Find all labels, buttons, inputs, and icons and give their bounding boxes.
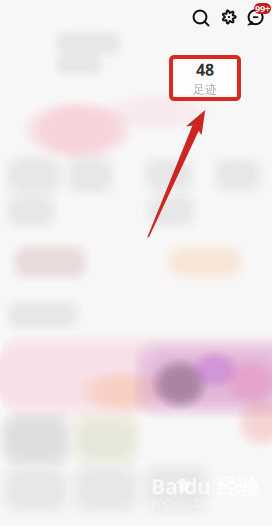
staticText: 48	[196, 59, 214, 80]
staticText: 99+	[255, 2, 270, 15]
button[interactable]: Creator centre	[214, 0, 244, 34]
staticText: Baidu 经验	[151, 472, 259, 500]
button[interactable]: Messages, 99 plus unread	[241, 0, 271, 34]
staticText: 足迹	[193, 82, 217, 97]
button[interactable]: 48	[175, 61, 235, 95]
button[interactable]: Search	[184, 0, 216, 34]
staticText: jingyan.baidu.com	[151, 494, 252, 510]
